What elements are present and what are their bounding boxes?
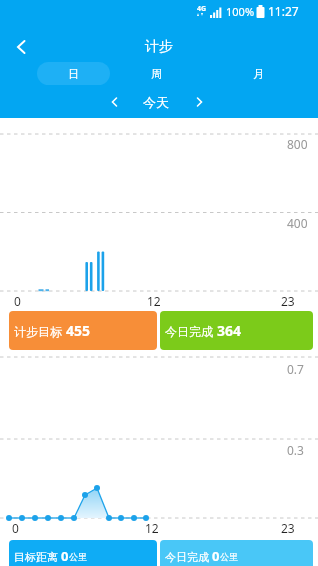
staticText: 0 <box>61 547 69 565</box>
staticText: 100% <box>226 4 255 19</box>
staticText: 11:27 <box>268 3 299 19</box>
button[interactable]: 周 <box>120 62 193 85</box>
staticText: 0 <box>12 520 19 536</box>
button[interactable]: 今日完成 <box>160 311 313 350</box>
staticText: 周 <box>151 67 162 81</box>
staticText: 0 <box>212 547 220 565</box>
staticText: 计步目标 <box>14 323 66 339</box>
staticText: 455 <box>66 321 91 340</box>
button[interactable]: 日 <box>37 62 110 85</box>
button[interactable]: 月 <box>222 62 295 85</box>
staticText: 日 <box>68 67 79 81</box>
button[interactable] <box>8 34 34 60</box>
staticText: 目标距离 <box>14 549 61 564</box>
staticText: 0 <box>14 293 21 309</box>
button[interactable]: 今天 <box>124 92 188 112</box>
staticText: 公里 <box>220 551 238 562</box>
button[interactable]: 目标距离 <box>9 540 157 566</box>
button[interactable]: 计步目标 <box>9 311 157 350</box>
staticText: 400 <box>287 215 308 231</box>
staticText: 计步 <box>145 38 173 56</box>
button[interactable]: 今日完成 <box>160 540 313 566</box>
staticText: 4G <box>197 4 207 14</box>
staticText: 23 <box>281 293 295 309</box>
button[interactable] <box>104 92 124 112</box>
staticText: 0.3 <box>287 442 304 458</box>
staticText: 12 <box>145 520 159 536</box>
staticText: 公里 <box>69 551 87 562</box>
button[interactable] <box>190 92 210 112</box>
staticText: 今日完成 <box>165 549 212 564</box>
staticText: 12 <box>147 293 161 309</box>
staticText: 364 <box>217 321 242 340</box>
staticText: 今日完成 <box>165 323 217 339</box>
staticText: 0.7 <box>287 361 304 377</box>
staticText: 今天 <box>143 94 169 110</box>
staticText: 月 <box>253 67 264 81</box>
staticText: 23 <box>281 520 295 536</box>
staticText: 800 <box>287 136 308 152</box>
